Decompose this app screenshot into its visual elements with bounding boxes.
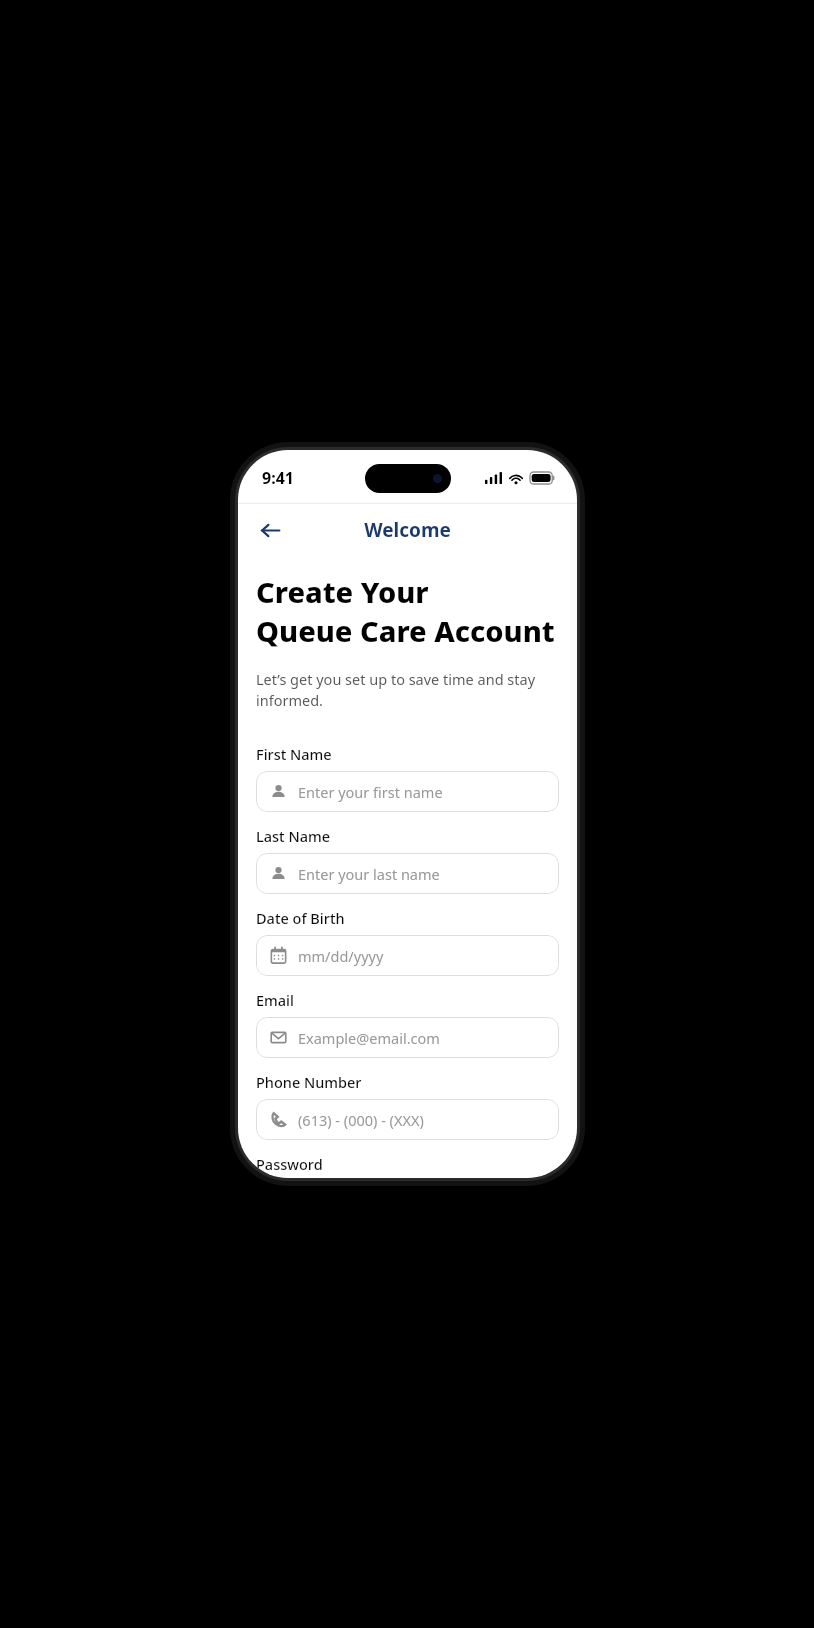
- staticText: Let’s get you set up to save time and st…: [256, 669, 559, 711]
- button[interactable]: Example@email.com: [256, 1017, 559, 1058]
- staticText: Password: [256, 1154, 323, 1174]
- staticText: (613) - (000) - (XXX): [298, 1110, 424, 1130]
- staticText: 9:41: [262, 467, 294, 489]
- staticText: Welcome: [364, 517, 451, 543]
- staticText: Phone Number: [256, 1072, 362, 1092]
- button[interactable]: Back: [250, 510, 290, 550]
- staticText: Date of Birth: [256, 908, 345, 928]
- staticText: Enter your last name: [298, 864, 440, 884]
- staticText: Last Name: [256, 826, 331, 846]
- staticText: mm/dd/yyyy: [298, 946, 384, 966]
- button[interactable]: Enter your first name: [256, 771, 559, 812]
- button[interactable]: mm/dd/yyyy: [256, 935, 559, 976]
- staticText: Create Your: [256, 572, 429, 611]
- button[interactable]: (613) - (000) - (XXX): [256, 1099, 559, 1140]
- staticText: Email: [256, 990, 294, 1010]
- staticText: Enter your first name: [298, 782, 443, 802]
- button[interactable]: Enter your last name: [256, 853, 559, 894]
- staticText: First Name: [256, 744, 332, 764]
- staticText: Example@email.com: [298, 1028, 440, 1048]
- staticText: Queue Care Account: [256, 611, 555, 650]
